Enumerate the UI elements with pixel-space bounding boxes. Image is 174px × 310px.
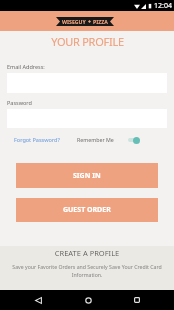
button[interactable]: Back (29, 291, 47, 309)
button[interactable]: Wiseguy Pizza (56, 17, 114, 26)
button[interactable]: Home (79, 291, 97, 309)
staticText: Save your Favorite Orders and Securely S… (9, 263, 165, 278)
button[interactable]: Forgot Password? (14, 136, 60, 143)
button[interactable]: Remember Me toggle (128, 136, 140, 144)
staticText: WISEGUY (62, 18, 86, 25)
staticText: Remember Me (77, 136, 114, 143)
staticText: GUEST ORDER (63, 205, 111, 215)
staticText: PIZZA (93, 18, 108, 25)
staticText: 12:04 (154, 1, 172, 11)
staticText: Password (7, 99, 32, 106)
staticText: YOUR PROFILE (51, 34, 124, 49)
staticText: CREATE A PROFILE (0, 248, 174, 258)
button[interactable]: Recent apps (128, 291, 146, 309)
button[interactable]: CREATE A PROFILE (0, 246, 174, 290)
button[interactable]: SIGN IN (16, 163, 158, 188)
staticText: Email Address: (7, 63, 45, 70)
staticText: SIGN IN (73, 171, 101, 181)
button[interactable]: GUEST ORDER (16, 198, 158, 222)
